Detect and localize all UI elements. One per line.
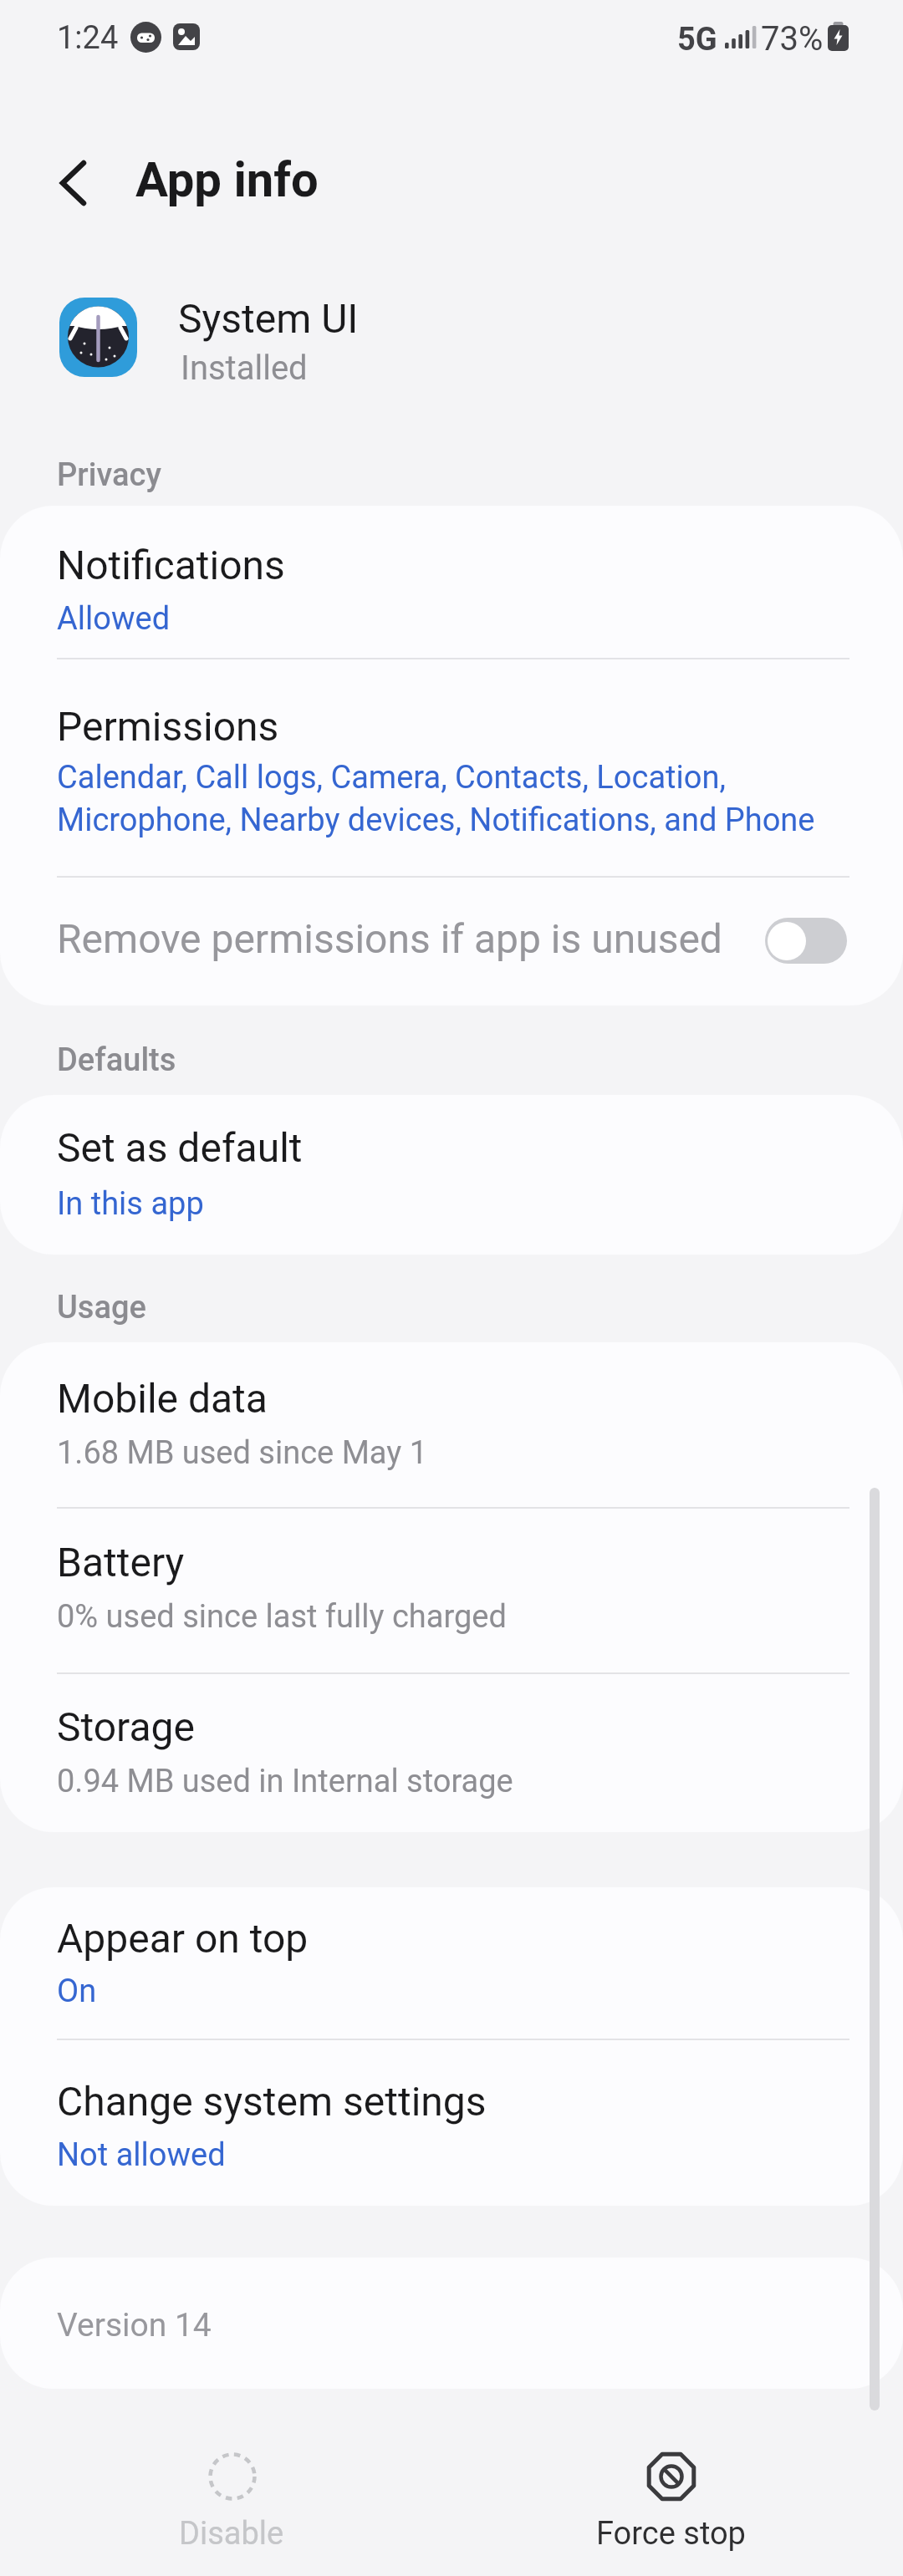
button[interactable] (765, 918, 847, 964)
staticText: Appear on top (57, 1915, 309, 1962)
button[interactable] (0, 506, 903, 658)
staticText: 5G (677, 21, 717, 59)
staticText: Allowed (57, 600, 171, 638)
button[interactable] (0, 1095, 903, 1255)
staticText: App info (135, 151, 319, 208)
button[interactable] (0, 1672, 903, 1832)
staticText: 1.68 MB used since May 1 (57, 1434, 427, 1472)
button[interactable] (0, 1342, 903, 1507)
staticText: Remove permissions if app is unused (57, 915, 722, 962)
staticText: Not allowed (57, 2136, 226, 2174)
staticText: Disable (179, 2515, 284, 2553)
staticText: 0.94 MB used in Internal storage (57, 1763, 513, 1800)
staticText: Battery (57, 1539, 185, 1586)
button[interactable] (131, 2427, 332, 2561)
button[interactable] (570, 2427, 771, 2561)
button[interactable] (0, 658, 903, 876)
staticText: Storage (57, 1703, 195, 1750)
staticText: Calendar, Call logs, Camera, Contacts, L… (57, 759, 726, 797)
staticText: System UI (178, 295, 359, 342)
staticText: Force stop (596, 2515, 746, 2553)
staticText: Privacy (57, 456, 161, 494)
staticText: Microphone, Nearby devices, Notification… (57, 802, 815, 839)
staticText: On (57, 1973, 97, 2010)
staticText: 0% used since last fully charged (57, 1598, 507, 1636)
button[interactable] (0, 2039, 903, 2206)
button[interactable] (0, 1507, 903, 1672)
staticText: Installed (181, 349, 308, 388)
staticText: Defaults (57, 1041, 176, 1079)
staticText: 73% (761, 19, 824, 59)
staticText: Version 14 (57, 2306, 212, 2344)
staticText: Mobile data (57, 1375, 268, 1422)
staticText: Change system settings (57, 2078, 487, 2125)
staticText: Set as default (57, 1124, 303, 1171)
staticText: Usage (57, 1289, 146, 1326)
staticText: 1:24 (57, 19, 119, 57)
staticText: In this app (57, 1185, 204, 1223)
staticText: Notifications (57, 542, 285, 588)
staticText: Permissions (57, 703, 279, 750)
button[interactable] (33, 146, 109, 221)
button[interactable] (0, 1887, 903, 2039)
